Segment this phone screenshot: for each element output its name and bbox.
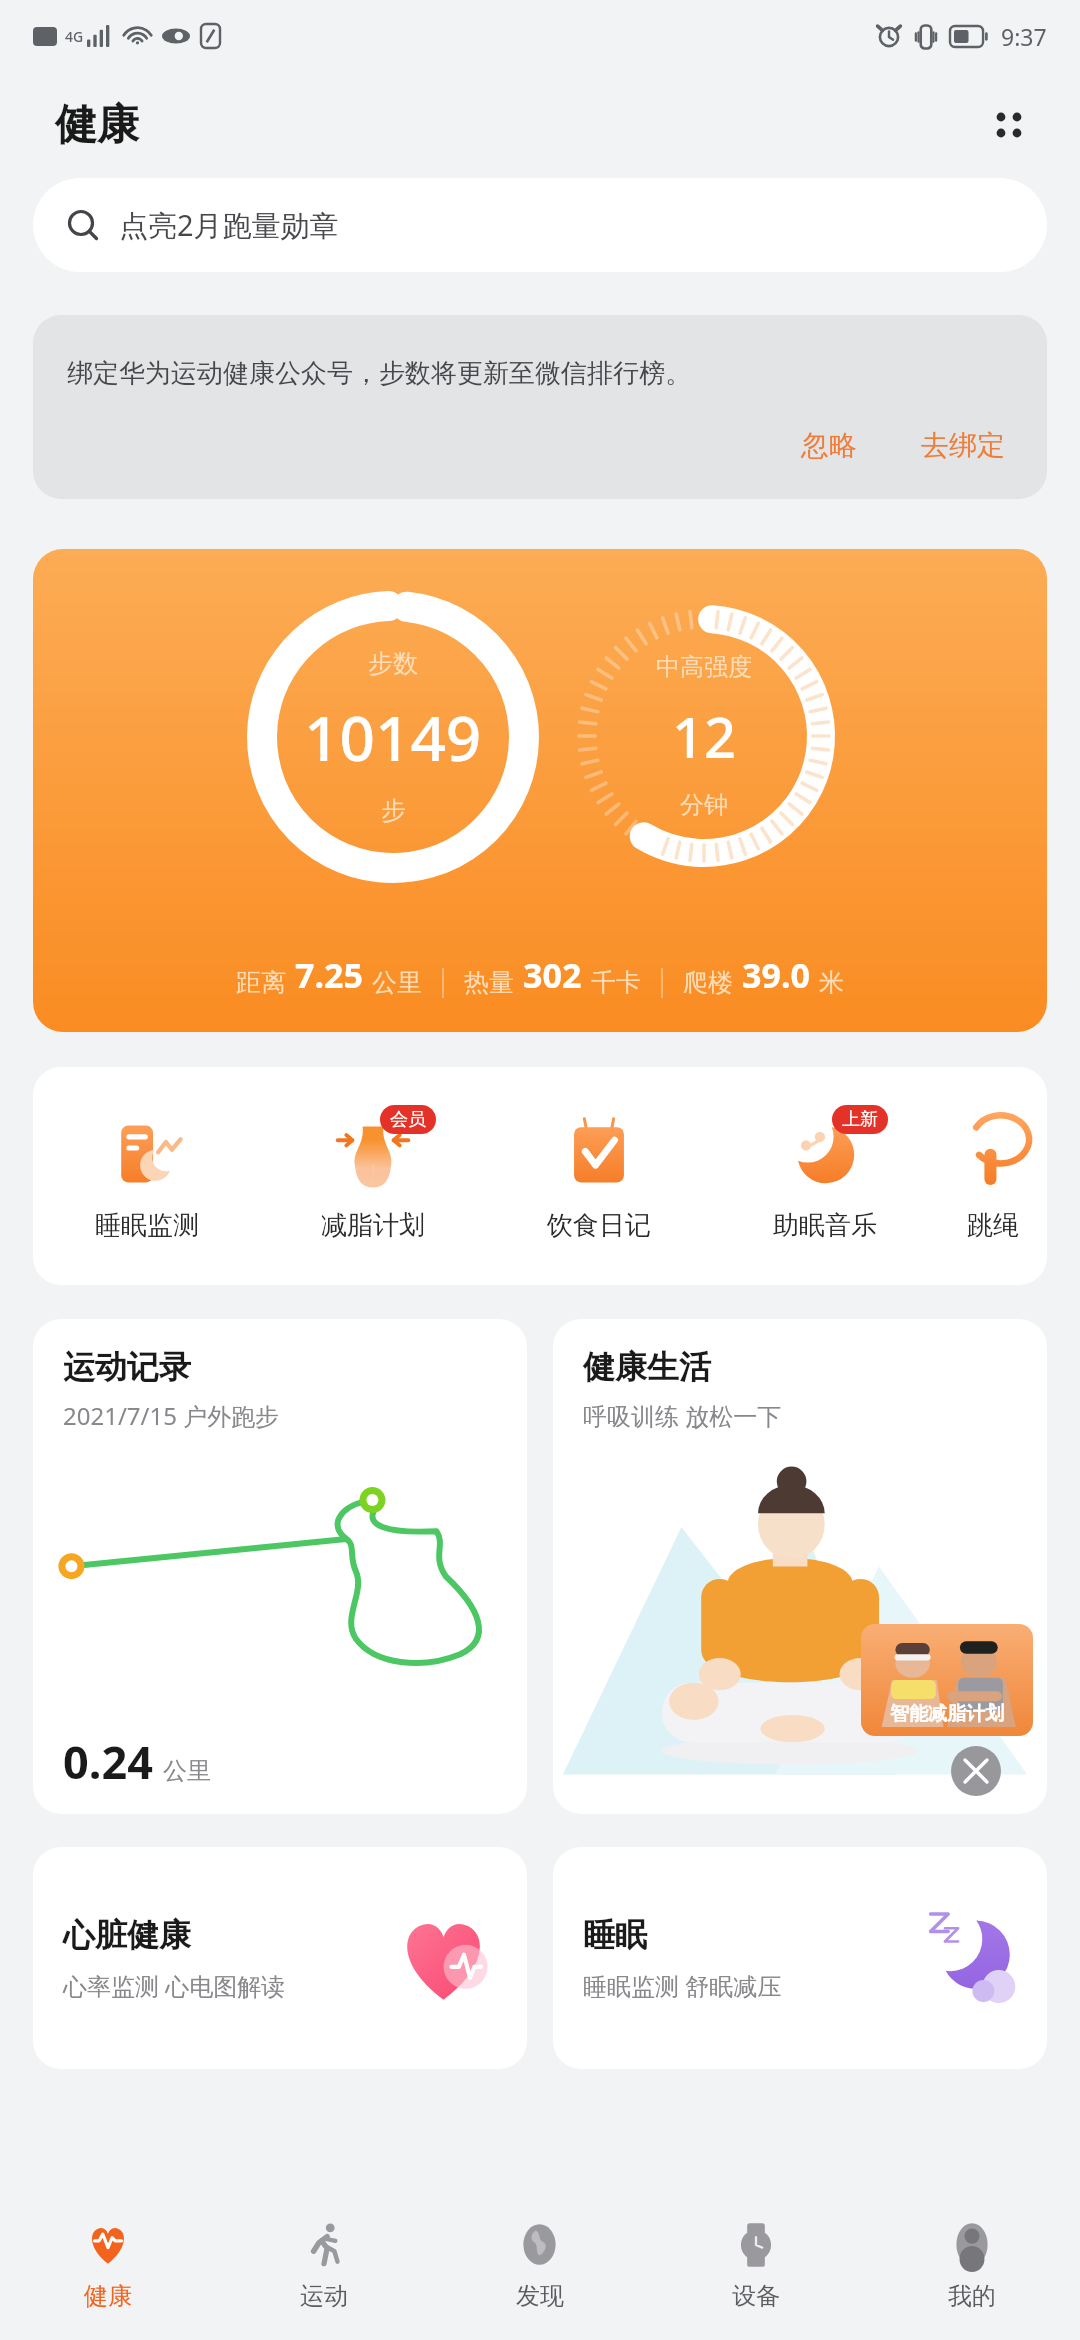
staticText: 绑定华为运动健康公众号，步数将更新至微信排行榜。 <box>67 357 691 390</box>
staticText: 千卡 <box>591 967 641 998</box>
staticText: 健康 <box>84 2281 132 2311</box>
staticText: 智能减脂计划 <box>890 1702 1004 1726</box>
button[interactable]: 健康 <box>0 2190 216 2340</box>
staticText: 睡眠监测 <box>95 1209 199 1242</box>
staticText: 距离 <box>236 967 286 998</box>
button[interactable]: 运动 <box>216 2190 432 2340</box>
staticText: 运动记录 <box>63 1347 191 1387</box>
button[interactable]: 设备 <box>648 2190 864 2340</box>
staticText: 健康 <box>55 99 139 152</box>
staticText: 运动 <box>300 2281 348 2311</box>
staticText: 睡眠 <box>583 1915 647 1955</box>
button[interactable]: 饮食日记 <box>486 1067 712 1285</box>
staticText: 公里 <box>372 967 422 998</box>
staticText: 心脏健康 <box>63 1915 191 1955</box>
staticText: 发现 <box>516 2281 564 2311</box>
button[interactable]: 忽略 <box>789 424 869 467</box>
staticText: 分钟 <box>680 790 728 820</box>
staticText: 忽略 <box>801 428 857 463</box>
button[interactable]: 睡眠 <box>553 1847 1047 2069</box>
staticText: 米 <box>819 967 844 998</box>
staticText: 饮食日记 <box>547 1209 651 1242</box>
button[interactable]: 步数 <box>33 549 1047 1032</box>
staticText: 步数 <box>368 648 418 679</box>
staticText: 爬楼 <box>683 967 733 998</box>
staticText: 助眠音乐 <box>773 1209 877 1242</box>
button[interactable]: 健康生活 <box>553 1319 1047 1814</box>
staticText: 热量 <box>464 967 514 998</box>
button[interactable]: 点亮2月跑量勋章 <box>33 178 1047 272</box>
staticText: 302 <box>523 952 582 998</box>
button[interactable]: More options <box>974 90 1044 160</box>
button[interactable]: 去绑定 <box>909 424 1017 467</box>
staticText: 中高强度 <box>656 652 752 682</box>
button[interactable]: 智能减脂计划 <box>861 1624 1033 1736</box>
staticText: 跳绳 <box>967 1209 1019 1242</box>
button[interactable]: 睡眠监测 <box>33 1067 260 1285</box>
staticText: 去绑定 <box>921 428 1005 463</box>
staticText: 睡眠监测 舒眠减压 <box>583 1969 782 2002</box>
staticText: 9:37 <box>1001 21 1047 52</box>
staticText: 上新 <box>842 1108 878 1131</box>
staticText: 健康生活 <box>583 1347 711 1387</box>
staticText: 12 <box>672 698 737 774</box>
staticText: 4G <box>65 27 84 46</box>
button[interactable]: 跳绳 <box>938 1067 1047 1285</box>
staticText: 心率监测 心电图解读 <box>63 1969 286 2002</box>
staticText: 2021/7/15 户外跑步 <box>63 1399 280 1432</box>
staticText: 0.24 <box>63 1731 153 1792</box>
staticText: 7.25 <box>295 952 363 998</box>
button[interactable]: 运动记录 <box>33 1319 527 1814</box>
button[interactable]: 发现 <box>432 2190 648 2340</box>
staticText: 设备 <box>732 2281 780 2311</box>
staticText: 步 <box>381 795 406 826</box>
staticText: 公里 <box>163 1756 211 1786</box>
button[interactable]: Close <box>951 1746 1001 1796</box>
staticText: 我的 <box>948 2281 996 2311</box>
button[interactable]: 心脏健康 <box>33 1847 527 2069</box>
button[interactable]: 上新 <box>712 1067 938 1285</box>
staticText: 会员 <box>390 1108 426 1131</box>
staticText: 点亮2月跑量勋章 <box>119 205 339 245</box>
staticText: 减脂计划 <box>321 1209 425 1242</box>
button[interactable]: 我的 <box>864 2190 1080 2340</box>
staticText: 39.0 <box>742 952 810 998</box>
staticText: 10149 <box>304 695 482 779</box>
staticText: 呼吸训练 放松一下 <box>583 1399 782 1432</box>
button[interactable]: 会员 <box>260 1067 486 1285</box>
